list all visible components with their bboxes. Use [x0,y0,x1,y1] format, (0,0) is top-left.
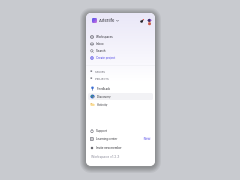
staticText: Workspace v1.2.3 [91,155,120,159]
staticText: Create project [96,56,116,59]
staticText: Workspaces [96,35,113,38]
staticText: New [144,137,150,140]
button[interactable]: Inbox [88,40,153,47]
button[interactable]: Feedback [88,85,153,92]
staticText: Learning center [96,137,118,140]
staticText: Activity [97,103,108,106]
button[interactable]: Workspaces [88,33,153,40]
staticText: Discovery [97,95,111,98]
button[interactable]: Learning center [88,135,153,142]
button[interactable]: Profile [146,18,152,24]
button[interactable]: Create project [88,54,153,61]
button[interactable]: Notifications [139,18,145,24]
staticText: Search [96,49,106,52]
staticText: SPACES [95,70,106,73]
button[interactable]: Invite new member [88,144,153,151]
button[interactable]: Discovery [88,93,153,100]
staticText: PROJECTS [95,77,109,80]
staticText: Feedback [97,87,111,90]
button[interactable]: PROJECTS [90,75,151,82]
staticText: Alterlife [99,18,115,23]
button[interactable]: Support [88,127,153,134]
staticText: Inbox [96,42,104,45]
staticText: Support [96,129,107,132]
button[interactable]: Activity [88,101,153,108]
staticText: Invite new member [96,146,122,149]
button[interactable]: SPACES [90,68,151,75]
button[interactable]: Search [88,47,153,54]
button[interactable]: Alterlife [92,18,119,23]
